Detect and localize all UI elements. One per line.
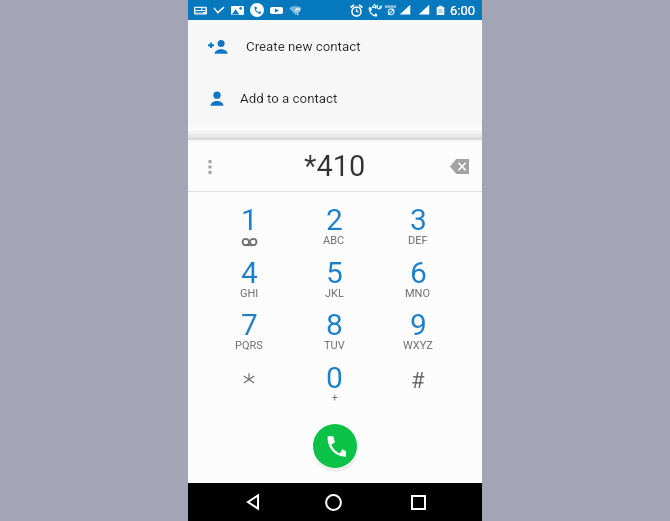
staticText: 6:00 [450,3,476,18]
button[interactable]: Call [313,424,357,468]
button[interactable]: 0 [298,360,370,412]
button[interactable]: 5 [298,255,370,307]
button[interactable]: Create new contact [188,20,482,72]
button[interactable]: Add to a contact [188,72,482,124]
button[interactable]: 9 [382,307,454,359]
staticText: 4 [241,255,258,287]
staticText: JKL [325,287,344,300]
button[interactable]: # [382,360,454,412]
button[interactable]: Recents [376,483,461,521]
staticText: 9 [410,307,427,339]
button[interactable]: 1 [213,202,285,254]
button[interactable]: 6 [382,255,454,307]
staticText: ABC [323,234,345,247]
staticText: PQRS [235,339,263,352]
button[interactable]: 8 [298,307,370,359]
button[interactable]: 3 [382,202,454,254]
staticText: DEF [408,234,428,247]
staticText: 3 [410,202,427,234]
staticText: 6 [410,255,427,287]
button[interactable] [213,360,285,412]
button[interactable]: 7 [213,307,285,359]
staticText: 2 [326,202,343,234]
button[interactable]: 2 [298,202,370,254]
button[interactable]: Home [291,483,376,521]
staticText: + [332,392,338,404]
staticText: WXYZ [403,339,433,352]
button[interactable]: Back [207,483,291,521]
staticText: # [411,368,425,394]
staticText: 7 [241,307,258,339]
staticText: 8 [326,307,343,339]
staticText: 1 [241,202,258,234]
button[interactable]: Backspace [436,142,482,191]
staticText: 0 [326,360,343,392]
staticText: TUV [324,339,345,352]
staticText: MNO [405,287,431,300]
button[interactable]: More options [188,142,232,191]
button[interactable]: 4 [213,255,285,307]
staticText: GHI [240,287,259,300]
staticText: Add to a contact [240,91,338,107]
staticText: Create new contact [246,39,361,55]
staticText: 5 [326,255,343,287]
staticText: *410 [304,149,366,183]
